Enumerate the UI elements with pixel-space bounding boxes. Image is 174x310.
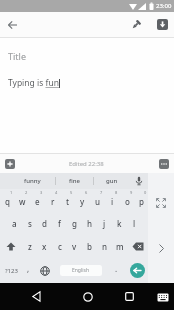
staticText: y	[80, 196, 85, 207]
staticText: Title	[8, 50, 26, 62]
staticText: 8	[115, 190, 118, 195]
button[interactable]: 6	[75, 189, 90, 212]
button[interactable]: 8	[105, 189, 120, 212]
button[interactable]: s	[22, 212, 37, 235]
staticText: u	[95, 196, 101, 207]
staticText: ,	[27, 263, 30, 274]
staticText: x	[42, 241, 47, 252]
staticText: d	[42, 218, 47, 229]
staticText: r	[51, 196, 55, 207]
button[interactable]	[0, 13, 24, 37]
staticText: n	[102, 241, 108, 252]
staticText: h	[87, 218, 93, 229]
button[interactable]	[124, 291, 135, 302]
staticText: b	[87, 241, 92, 252]
staticText: p	[139, 196, 144, 207]
button[interactable]	[157, 19, 168, 30]
button[interactable]	[0, 235, 22, 258]
button[interactable]: 4	[45, 189, 60, 212]
button[interactable]: h	[82, 212, 97, 235]
staticText: fine	[69, 177, 80, 185]
button[interactable]: 2	[15, 189, 30, 212]
button[interactable]	[128, 17, 144, 33]
button[interactable]	[34, 258, 56, 283]
button[interactable]: v	[67, 235, 82, 258]
button[interactable]: ?123	[0, 258, 22, 283]
button[interactable]: f	[52, 212, 67, 235]
staticText: 5	[70, 190, 73, 195]
button[interactable]: English	[56, 258, 106, 283]
button[interactable]: 1	[0, 189, 15, 212]
staticText: English	[72, 267, 90, 274]
staticText: funny	[24, 177, 41, 185]
button[interactable]	[31, 291, 42, 302]
button[interactable]	[127, 235, 148, 258]
button[interactable]: gun	[94, 173, 129, 189]
button[interactable]	[156, 291, 169, 304]
staticText: o	[125, 196, 130, 207]
staticText: i	[111, 196, 114, 207]
button[interactable]: k	[112, 212, 127, 235]
button[interactable]: j	[97, 212, 112, 235]
staticText: 6	[85, 190, 88, 195]
staticText: t	[66, 196, 70, 207]
button[interactable]	[153, 195, 169, 211]
staticText: 4	[55, 190, 58, 195]
staticText: g	[72, 218, 77, 229]
staticText: a	[12, 218, 17, 229]
button[interactable]: g	[67, 212, 82, 235]
staticText: z	[28, 241, 32, 252]
button[interactable]: n	[97, 235, 112, 258]
button[interactable]	[159, 159, 169, 169]
button[interactable]: ,	[22, 258, 34, 283]
button[interactable]: funny	[10, 173, 55, 189]
button[interactable]: 5	[60, 189, 75, 212]
staticText: 0	[144, 190, 147, 195]
button[interactable]	[130, 263, 145, 278]
button[interactable]: 7	[90, 189, 105, 212]
staticText: .	[115, 263, 118, 274]
button[interactable]: 0	[135, 189, 148, 212]
button[interactable]: b	[82, 235, 97, 258]
staticText: gun	[106, 177, 118, 185]
button[interactable]	[82, 291, 93, 302]
button[interactable]	[153, 240, 169, 256]
button[interactable]: z	[22, 235, 37, 258]
staticText: q	[5, 196, 10, 207]
staticText: l	[133, 218, 136, 229]
button[interactable]: 9	[120, 189, 135, 212]
button[interactable]: fine	[56, 173, 93, 189]
staticText: 1	[10, 190, 13, 195]
staticText: e	[35, 196, 40, 207]
button[interactable]: c	[52, 235, 67, 258]
staticText: f	[58, 218, 61, 229]
button[interactable]: a	[7, 212, 22, 235]
staticText: m	[116, 241, 124, 252]
button[interactable]: m	[112, 235, 127, 258]
staticText: v	[72, 241, 77, 252]
staticText: c	[58, 241, 62, 252]
staticText: j	[103, 218, 106, 229]
staticText: s	[28, 218, 32, 229]
staticText: 23:00	[156, 2, 172, 10]
staticText: 2	[25, 190, 28, 195]
button[interactable]: .	[106, 258, 126, 283]
staticText: 3	[40, 190, 43, 195]
button[interactable]: 3	[30, 189, 45, 212]
staticText: Edited 22:38	[69, 160, 104, 168]
button[interactable]: x	[37, 235, 52, 258]
button[interactable]	[129, 173, 148, 189]
button[interactable]: d	[37, 212, 52, 235]
staticText: 9	[130, 190, 133, 195]
button[interactable]	[5, 159, 15, 169]
button[interactable]: l	[127, 212, 142, 235]
staticText: k	[117, 218, 122, 229]
staticText: 7	[100, 190, 103, 195]
staticText: Typing is fun	[8, 77, 59, 89]
staticText: w	[19, 196, 26, 207]
staticText: ?123	[5, 267, 18, 275]
